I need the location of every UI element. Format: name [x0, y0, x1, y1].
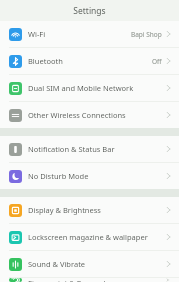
staticText: No Disturb Mode	[28, 171, 89, 181]
staticText: Display & Brightness	[28, 205, 101, 215]
button[interactable]: Dual SIM and Mobile Network	[0, 75, 179, 101]
staticText: Dual SIM and Mobile Network	[28, 83, 134, 93]
staticText: Sound & Vibrate	[28, 259, 86, 269]
button[interactable]: Display & Brightness	[0, 197, 179, 223]
staticText: Bluetooth	[28, 56, 63, 66]
button[interactable]: Other Wireless Connections	[0, 102, 179, 128]
staticText: Fingerprint & Passcode	[28, 278, 110, 282]
staticText: Notification & Status Bar	[28, 144, 115, 154]
button[interactable]: Sound & Vibrate	[0, 251, 179, 277]
button[interactable]: Bluetooth	[0, 48, 179, 74]
staticText: Settings	[73, 5, 106, 17]
staticText: Other Wireless Connections	[28, 110, 126, 120]
button[interactable]: Notification & Status Bar	[0, 136, 179, 162]
button[interactable]: Wi-Fi	[0, 21, 179, 47]
button[interactable]: No Disturb Mode	[0, 163, 179, 189]
staticText: Lockscreen magazine & wallpaper	[28, 232, 148, 242]
button[interactable]: Fingerprint & Passcode	[0, 278, 179, 282]
button[interactable]: Lockscreen magazine & wallpaper	[0, 224, 179, 250]
staticText: Bapi Shop	[131, 30, 162, 39]
staticText: Wi-Fi	[28, 29, 46, 39]
staticText: Off	[152, 57, 162, 66]
